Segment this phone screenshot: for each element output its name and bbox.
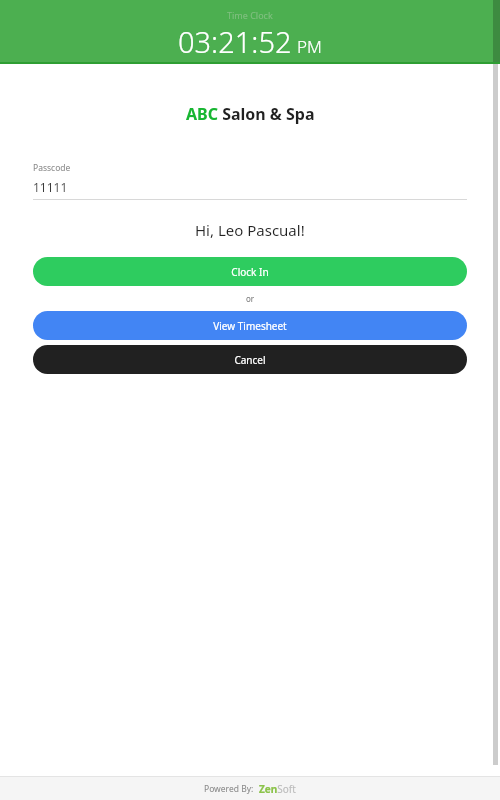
staticText: ZenSoft <box>259 782 296 796</box>
staticText: Powered By: <box>204 783 254 795</box>
staticText: or <box>246 293 255 304</box>
button[interactable]: Cancel <box>33 345 467 374</box>
staticText: View Timesheet <box>213 319 287 333</box>
staticText: PM <box>297 35 322 58</box>
staticText: 03:21:52 <box>178 22 292 61</box>
staticText: 11111 <box>33 179 68 195</box>
staticText: ABC Salon & Spa <box>186 103 315 125</box>
button[interactable]: Clock In <box>33 257 467 286</box>
staticText: Passcode <box>33 162 71 174</box>
staticText: Clock In <box>231 265 269 279</box>
staticText: Time Clock <box>227 9 273 21</box>
button[interactable]: Passcode <box>33 162 467 200</box>
staticText: Hi, Leo Pascual! <box>195 220 305 240</box>
staticText: Cancel <box>234 353 266 367</box>
button[interactable]: View Timesheet <box>33 311 467 340</box>
